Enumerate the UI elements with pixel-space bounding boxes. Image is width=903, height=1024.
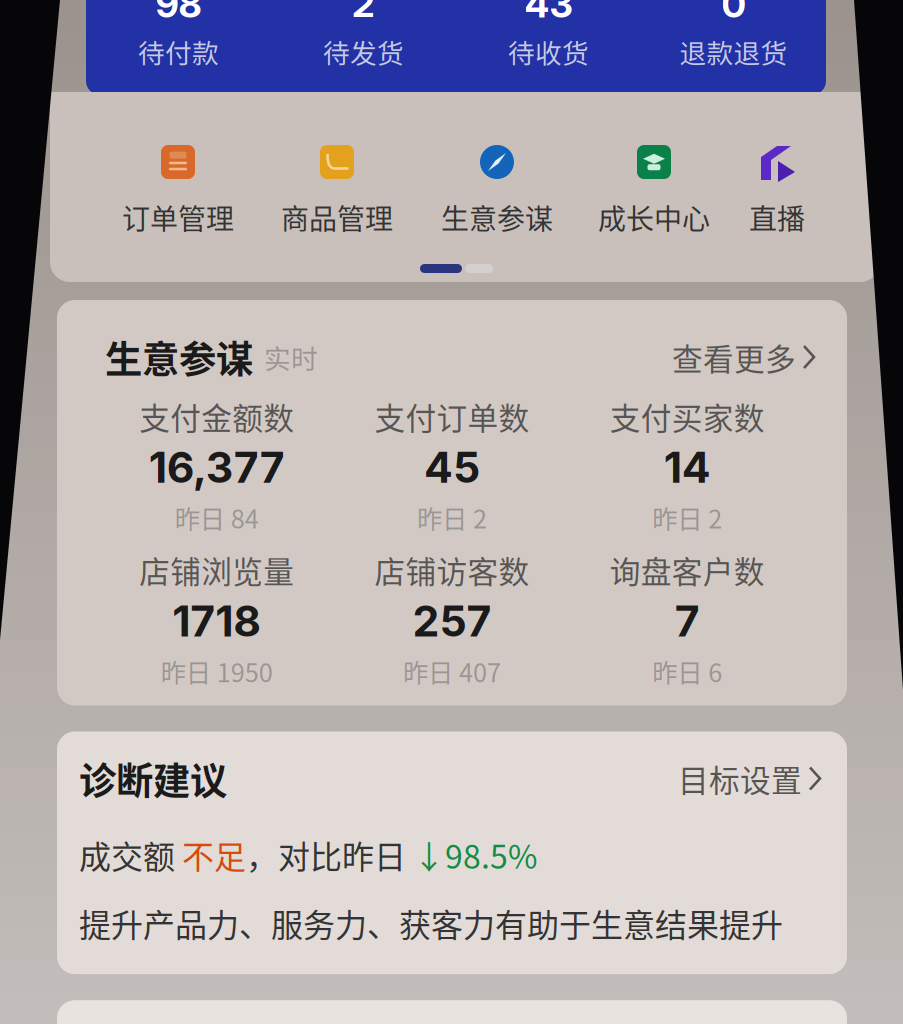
staticText: 诊断建议 bbox=[79, 751, 227, 806]
staticText: ↓98.5% bbox=[413, 831, 537, 878]
staticText: 询盘客户数 bbox=[610, 548, 765, 592]
staticText: 16,377 bbox=[149, 441, 285, 493]
staticText: 0 bbox=[721, 0, 745, 26]
staticText: 2 bbox=[352, 0, 375, 26]
staticText: 43 bbox=[524, 0, 572, 26]
button[interactable]: 0 bbox=[641, 0, 826, 73]
staticText: 直播 bbox=[749, 197, 805, 237]
staticText: 店铺浏览量 bbox=[139, 548, 294, 592]
staticText: 待发货 bbox=[323, 32, 404, 71]
button[interactable]: 2 bbox=[271, 0, 456, 73]
staticText: 不足 bbox=[182, 831, 246, 878]
staticText: 生意参谋 bbox=[441, 197, 553, 237]
staticText: 昨日 6 bbox=[652, 653, 722, 689]
button[interactable]: 商品管理 bbox=[252, 145, 422, 237]
staticText: 提升产品力、服务力、获客力有助于生意结果提升 bbox=[79, 900, 783, 946]
staticText: ，对比昨日 bbox=[246, 831, 413, 878]
staticText: 实时 bbox=[258, 338, 318, 376]
staticText: 14 bbox=[664, 441, 711, 493]
staticText: 昨日 84 bbox=[175, 499, 259, 536]
staticText: 待付款 bbox=[138, 32, 219, 71]
staticText: 支付订单数 bbox=[374, 394, 529, 438]
staticText: 昨日 2 bbox=[652, 499, 722, 536]
button[interactable]: 订单管理 bbox=[93, 145, 263, 237]
staticText: 98 bbox=[155, 0, 201, 26]
staticText: 成交额 bbox=[79, 831, 182, 878]
staticText: 商品管理 bbox=[281, 197, 393, 237]
staticText: 昨日 407 bbox=[403, 653, 501, 689]
button[interactable]: 成长中心 bbox=[569, 145, 739, 237]
button[interactable]: 生意参谋 bbox=[412, 145, 582, 237]
staticText: 订单管理 bbox=[122, 197, 234, 237]
staticText: 支付买家数 bbox=[610, 394, 765, 438]
staticText: 1718 bbox=[172, 595, 261, 647]
button[interactable]: 直播 bbox=[692, 145, 862, 237]
staticText: 支付金额数 bbox=[139, 394, 294, 438]
staticText: 成长中心 bbox=[598, 197, 710, 237]
button[interactable]: 98 bbox=[86, 0, 271, 73]
button[interactable]: 生意参谋 bbox=[57, 300, 847, 384]
staticText: 查看更多 bbox=[672, 335, 796, 379]
staticText: 昨日 1950 bbox=[161, 653, 273, 689]
staticText: 生意参谋 bbox=[105, 330, 253, 384]
staticText: 待收货 bbox=[508, 32, 589, 71]
staticText: 45 bbox=[424, 441, 480, 493]
staticText: 目标设置 bbox=[678, 756, 802, 801]
button[interactable]: 43 bbox=[456, 0, 641, 73]
button[interactable]: 诊断建议 bbox=[79, 751, 825, 806]
staticText: 257 bbox=[412, 595, 491, 647]
staticText: 退款退货 bbox=[679, 32, 787, 71]
staticText: 7 bbox=[675, 595, 700, 647]
staticText: 昨日 2 bbox=[417, 499, 487, 536]
staticText: 店铺访客数 bbox=[374, 548, 529, 592]
